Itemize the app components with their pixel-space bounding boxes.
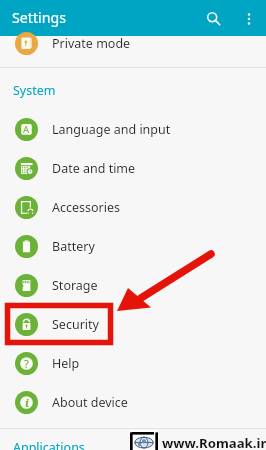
staticText: ?	[24, 356, 29, 371]
staticText: Private mode	[52, 35, 131, 52]
staticText: System	[13, 82, 56, 99]
button[interactable]: Accessories	[0, 188, 266, 227]
staticText: About device	[52, 394, 128, 411]
staticText: Battery	[52, 238, 95, 255]
staticText: Language and input	[52, 121, 171, 138]
button[interactable]: Storage	[0, 266, 266, 305]
button[interactable]: Security	[0, 305, 266, 344]
staticText: i	[25, 395, 29, 410]
button[interactable]: Search	[197, 2, 230, 35]
staticText: www.Romaak.ir	[162, 434, 266, 450]
staticText: Accessories	[52, 199, 121, 216]
button[interactable]: A	[0, 110, 266, 149]
staticText: Security	[52, 316, 99, 333]
staticText: Applications	[13, 439, 85, 450]
button[interactable]: i	[0, 383, 266, 422]
button[interactable]: Date and time	[0, 149, 266, 188]
staticText: Date and time	[52, 160, 136, 177]
button[interactable]: Private mode	[0, 36, 266, 67]
staticText: Help	[52, 355, 80, 372]
staticText: Storage	[52, 277, 98, 294]
button[interactable]: Battery	[0, 227, 266, 266]
button[interactable]: More options	[236, 6, 262, 32]
staticText: Settings	[12, 8, 66, 27]
staticText: A	[23, 123, 30, 136]
button[interactable]: ?	[0, 344, 266, 383]
